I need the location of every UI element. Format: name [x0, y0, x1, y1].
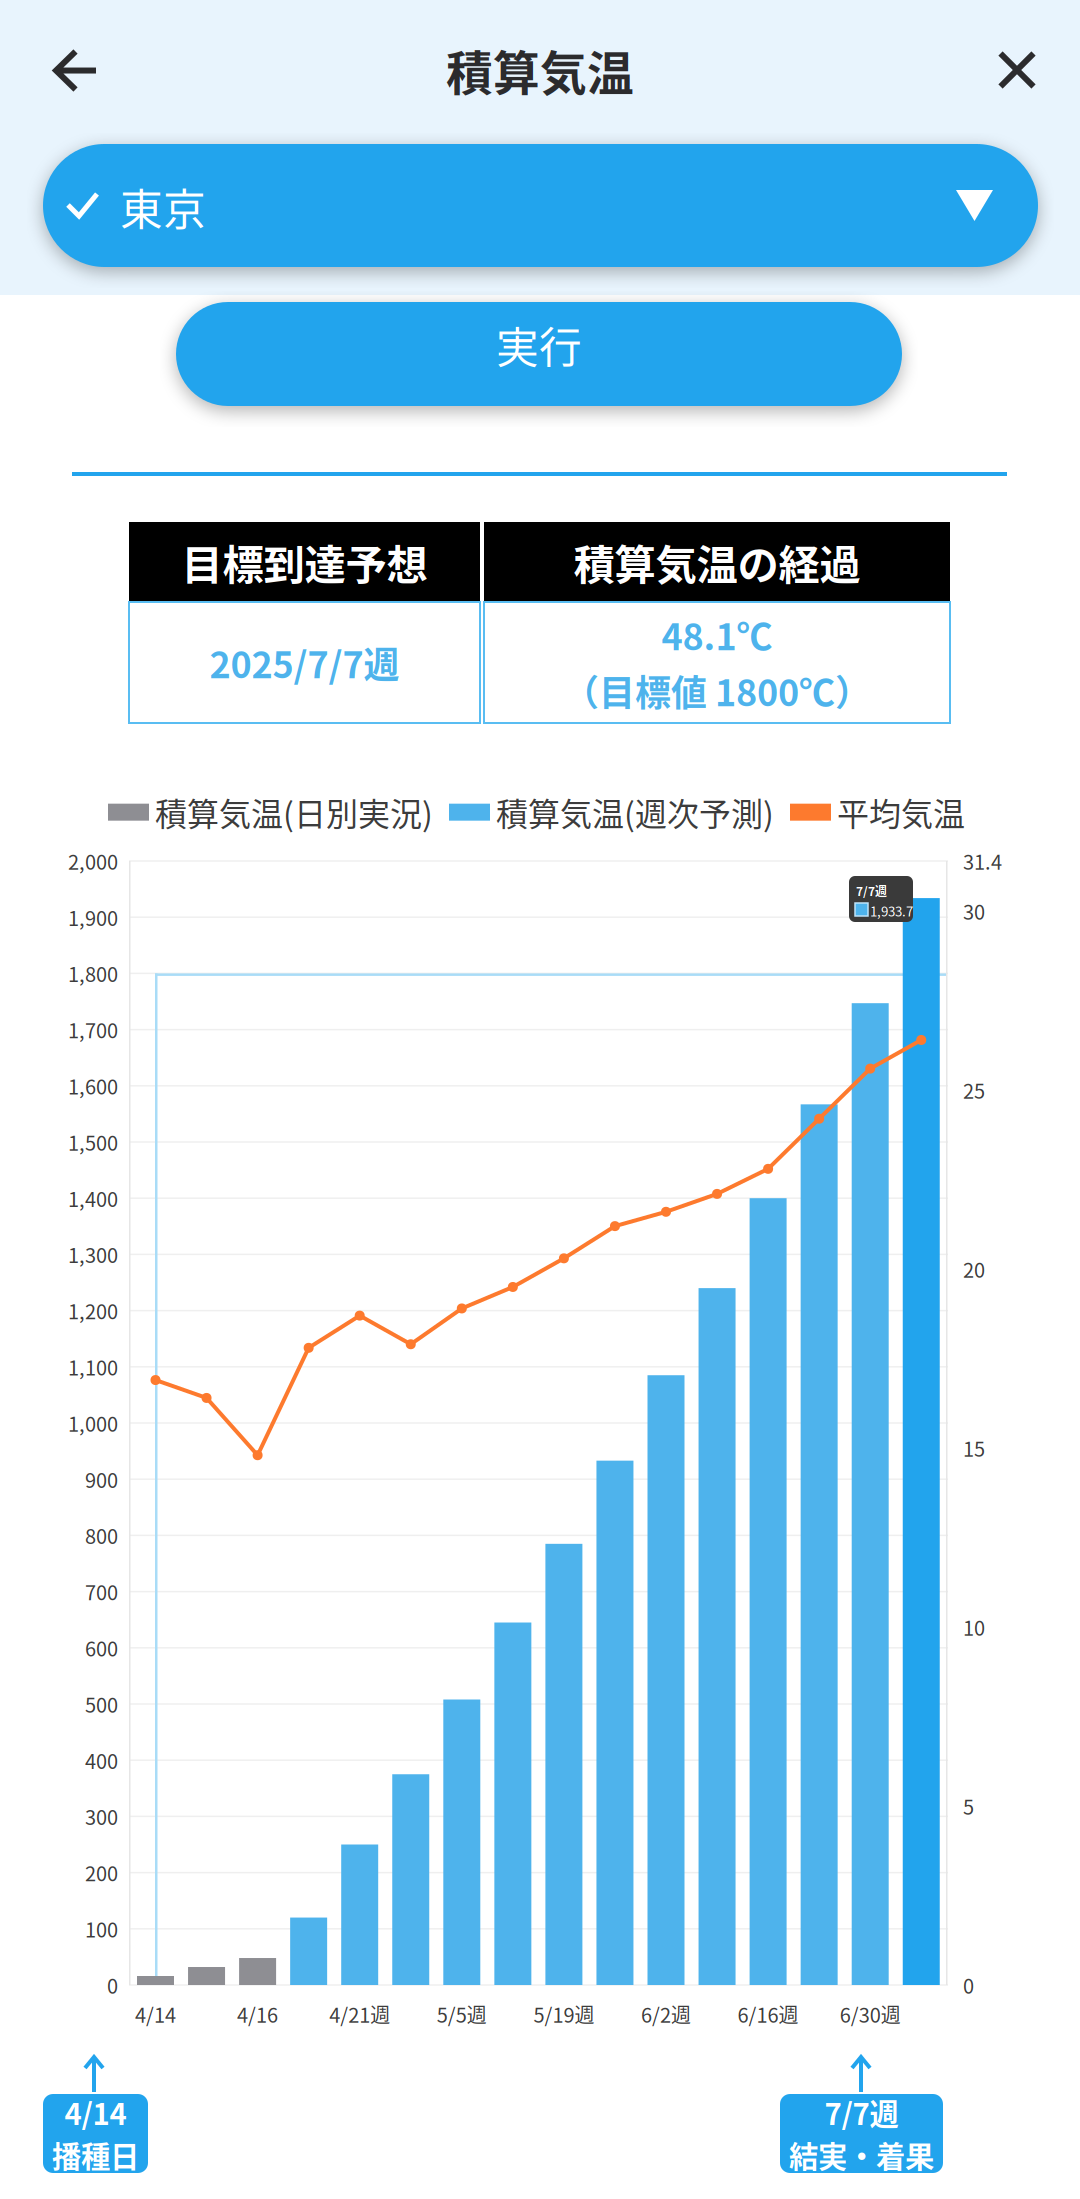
staticText: 1,600: [68, 1071, 118, 1100]
staticText: 1,800: [68, 959, 118, 988]
staticText: 4/14: [64, 2091, 126, 2133]
staticText: 1,700: [68, 1015, 118, 1044]
staticText: 6/16週: [738, 1999, 799, 2028]
staticText: 25: [963, 1076, 985, 1105]
staticText: 200: [85, 1858, 118, 1887]
staticText: 6/30週: [840, 1999, 901, 2028]
staticText: 積算気温の経過: [573, 532, 860, 592]
button[interactable]: 東京: [43, 144, 1038, 267]
staticText: 東京: [120, 176, 206, 238]
staticText: 1,300: [68, 1240, 118, 1269]
staticText: 4/21週: [329, 1999, 390, 2028]
staticText: 900: [85, 1465, 118, 1494]
staticText: 1,200: [68, 1296, 118, 1325]
staticText: 播種日: [52, 2133, 139, 2176]
staticText: 48.1℃: [661, 608, 772, 660]
staticText: 積算気温: [446, 36, 634, 104]
staticText: 1,933.7: [870, 901, 913, 920]
staticText: 20: [963, 1255, 985, 1284]
staticText: 4/16: [237, 1999, 278, 2028]
staticText: （目標値 1800℃）: [563, 664, 871, 717]
staticText: 300: [85, 1802, 118, 1831]
staticText: 4/14: [135, 1999, 176, 2028]
staticText: 実行: [496, 314, 582, 376]
staticText: 100: [85, 1914, 118, 1943]
staticText: 積算気温(日別実況): [155, 789, 433, 835]
staticText: 2,000: [68, 846, 118, 875]
staticText: 1,400: [68, 1184, 118, 1213]
staticText: 0: [107, 1970, 118, 1999]
staticText: 結実・着果: [789, 2133, 934, 2176]
staticText: 1,000: [68, 1408, 118, 1437]
staticText: 700: [85, 1577, 118, 1606]
staticText: 5: [963, 1791, 974, 1820]
staticText: 1,500: [68, 1127, 118, 1156]
staticText: 800: [85, 1521, 118, 1550]
button[interactable]: 閉じる: [967, 20, 1067, 120]
staticText: 5/19週: [533, 1999, 594, 2028]
staticText: 0: [963, 1970, 974, 1999]
staticText: 600: [85, 1633, 118, 1662]
staticText: 30: [963, 897, 985, 926]
staticText: 500: [85, 1689, 118, 1718]
button[interactable]: 戻る: [26, 21, 126, 121]
staticText: 31.4: [963, 846, 1002, 875]
staticText: 7/7週: [856, 882, 887, 899]
staticText: 400: [85, 1746, 118, 1775]
staticText: 15: [963, 1434, 985, 1463]
staticText: 1,900: [68, 903, 118, 932]
staticText: 2025/7/7週: [209, 636, 399, 688]
staticText: 目標到達予想: [181, 532, 427, 592]
staticText: 5/5週: [437, 1999, 487, 2028]
staticText: 1,100: [68, 1352, 118, 1381]
button[interactable]: 実行: [176, 302, 902, 406]
staticText: 平均気温: [837, 789, 965, 835]
staticText: 7/7週: [824, 2091, 898, 2133]
staticText: 6/2週: [641, 1999, 691, 2028]
staticText: 積算気温(週次予測): [496, 789, 774, 835]
staticText: 10: [963, 1613, 985, 1642]
